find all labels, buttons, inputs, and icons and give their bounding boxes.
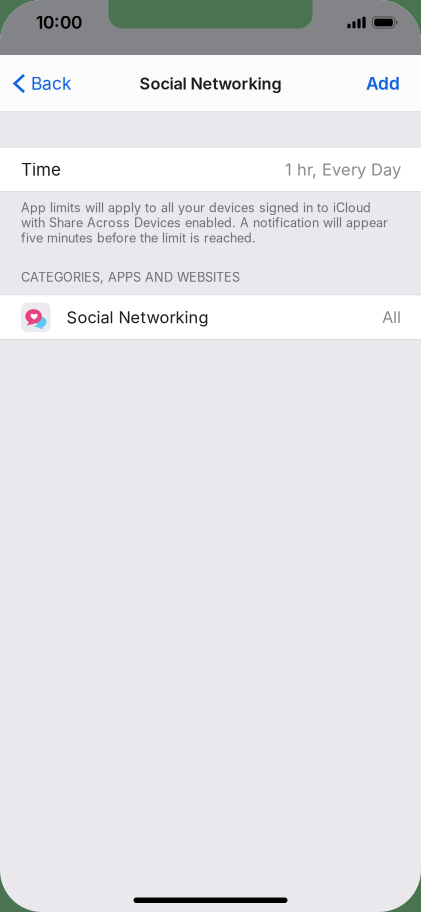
staticText: Back xyxy=(31,73,72,94)
button[interactable]: Social Networking xyxy=(0,295,421,339)
staticText: Social Networking xyxy=(66,307,208,327)
button[interactable]: Back xyxy=(0,61,84,105)
staticText: 1 hr, Every Day xyxy=(285,159,401,179)
staticText: App limits will apply to all your device… xyxy=(21,200,388,245)
button[interactable]: Add xyxy=(354,61,412,105)
staticText: Add xyxy=(366,73,400,94)
staticText: 10:00 xyxy=(36,12,82,33)
staticText: Time xyxy=(21,159,61,180)
staticText: Social Networking xyxy=(139,74,281,93)
staticText: All xyxy=(382,307,401,327)
button[interactable]: Time xyxy=(0,147,421,191)
staticText: CATEGORIES, APPS AND WEBSITES xyxy=(21,269,240,285)
